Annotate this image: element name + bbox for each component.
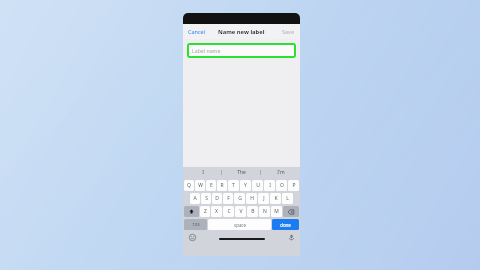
staticText: Label name: [192, 47, 221, 54]
staticText: T: [232, 182, 235, 189]
staticText: K: [274, 195, 278, 202]
staticText: C: [227, 208, 231, 215]
staticText: L: [286, 195, 289, 202]
staticText: J: [263, 195, 265, 202]
staticText: Name new label: [218, 28, 265, 36]
button[interactable]: K: [270, 193, 281, 204]
button[interactable]: E: [206, 180, 216, 191]
staticText: I: [269, 182, 271, 189]
button[interactable]: R: [217, 180, 227, 191]
staticText: N: [263, 208, 267, 215]
button[interactable]: Y: [240, 180, 251, 191]
button[interactable]: S: [201, 193, 211, 204]
staticText: O: [280, 182, 284, 189]
button[interactable]: W: [195, 180, 205, 191]
button[interactable]: X: [211, 206, 222, 217]
button[interactable]: J: [258, 193, 269, 204]
button[interactable]: space: [208, 219, 271, 230]
button[interactable]: Save: [282, 28, 295, 35]
button[interactable]: The: [222, 167, 261, 178]
button[interactable]: I: [183, 167, 222, 178]
button[interactable]: B: [247, 206, 258, 217]
staticText: E: [210, 182, 213, 189]
button[interactable]: N: [259, 206, 270, 217]
staticText: U: [256, 182, 260, 189]
button[interactable]: A: [190, 193, 200, 204]
staticText: A: [193, 195, 197, 202]
staticText: P: [292, 182, 296, 189]
button[interactable]: Dictation: [287, 233, 295, 241]
button[interactable]: I'm: [261, 167, 300, 178]
staticText: M: [274, 208, 279, 215]
button[interactable]: Cancel: [188, 28, 206, 35]
button[interactable]: P: [288, 180, 299, 191]
staticText: Z: [204, 208, 207, 215]
staticText: The: [237, 169, 246, 176]
button[interactable]: L: [282, 193, 293, 204]
staticText: I'm: [277, 169, 285, 176]
button[interactable]: Label name: [187, 43, 296, 58]
staticText: done: [280, 222, 291, 228]
staticText: F: [227, 195, 230, 202]
staticText: X: [215, 208, 218, 215]
button[interactable]: Shift: [184, 206, 199, 217]
button[interactable]: I: [264, 180, 275, 191]
staticText: G: [238, 195, 242, 202]
button[interactable]: Z: [200, 206, 210, 217]
staticText: H: [250, 195, 254, 202]
staticText: R: [220, 182, 224, 189]
button[interactable]: Q: [184, 180, 194, 191]
staticText: V: [239, 208, 243, 215]
button[interactable]: Backspace: [283, 206, 299, 217]
button[interactable]: F: [223, 193, 233, 204]
button[interactable]: H: [246, 193, 257, 204]
button[interactable]: V: [235, 206, 246, 217]
staticText: space: [234, 222, 246, 228]
staticText: I: [202, 169, 204, 176]
staticText: 123: [192, 222, 200, 228]
button[interactable]: D: [212, 193, 222, 204]
button[interactable]: T: [228, 180, 239, 191]
button[interactable]: C: [223, 206, 234, 217]
staticText: Q: [187, 182, 191, 189]
button[interactable]: M: [271, 206, 282, 217]
button[interactable]: G: [234, 193, 245, 204]
staticText: B: [251, 208, 255, 215]
button[interactable]: Emoji: [188, 233, 196, 241]
staticText: S: [205, 195, 208, 202]
button[interactable]: done: [272, 219, 299, 230]
staticText: D: [215, 195, 219, 202]
button[interactable]: O: [276, 180, 287, 191]
staticText: W: [198, 182, 203, 189]
button[interactable]: U: [252, 180, 263, 191]
staticText: Y: [244, 182, 247, 189]
button[interactable]: 123: [184, 219, 207, 230]
